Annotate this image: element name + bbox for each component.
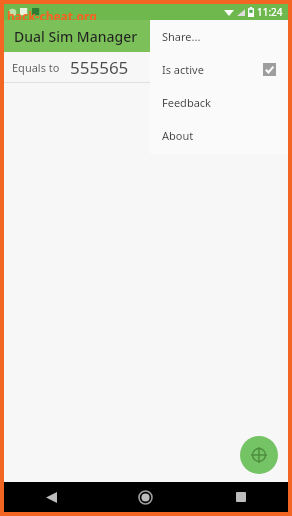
staticText: hack-cheat.org: [7, 8, 97, 24]
staticText: Dual Sim Manager: [14, 27, 138, 46]
button[interactable]: Share...: [150, 20, 288, 53]
button[interactable]: Equals to: [4, 52, 288, 82]
staticText: Share...: [162, 29, 201, 44]
button[interactable]: Back: [4, 482, 98, 512]
button[interactable]: About: [150, 119, 288, 152]
staticText: Equals to: [12, 60, 60, 75]
staticText: About: [162, 128, 194, 143]
button[interactable]: Add: [240, 436, 278, 474]
staticText: 555565: [70, 56, 129, 79]
staticText: Feedback: [162, 95, 211, 110]
staticText: Is active: [162, 62, 204, 77]
button[interactable]: Is active: [150, 53, 288, 86]
button[interactable]: Home: [98, 482, 193, 512]
button[interactable]: Feedback: [150, 86, 288, 119]
staticText: 11:24: [257, 5, 283, 19]
button[interactable]: Recent apps: [193, 482, 288, 512]
